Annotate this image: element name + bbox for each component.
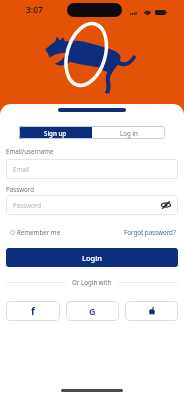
button[interactable]: Login with Facebook	[6, 301, 60, 321]
staticText: Email/username	[6, 147, 54, 155]
button[interactable]: Remember me	[10, 228, 61, 236]
staticText: G	[89, 305, 96, 317]
button[interactable]: Forgot password?	[124, 228, 176, 236]
staticText: Email	[13, 165, 29, 173]
staticText: Password	[6, 185, 34, 193]
staticText: 3:07	[26, 4, 43, 16]
staticText: f	[31, 304, 35, 318]
button[interactable]: Login with Apple	[125, 301, 178, 321]
other: Show password	[161, 200, 171, 210]
button[interactable]: Email	[6, 159, 178, 179]
button[interactable]: Log in	[92, 126, 165, 139]
staticText: Or Login with	[72, 278, 112, 286]
staticText: Remember me	[17, 228, 61, 236]
staticText: Login	[82, 253, 102, 263]
staticText: Password	[13, 201, 41, 209]
button[interactable]: Login with Google	[66, 301, 119, 321]
staticText: Forgot password?	[124, 228, 176, 236]
button[interactable]: Login	[6, 248, 178, 267]
button[interactable]: Sign up	[19, 126, 92, 139]
staticText: Log in	[120, 129, 138, 137]
button[interactable]: Password	[6, 195, 178, 215]
staticText: Sign up	[44, 129, 67, 137]
